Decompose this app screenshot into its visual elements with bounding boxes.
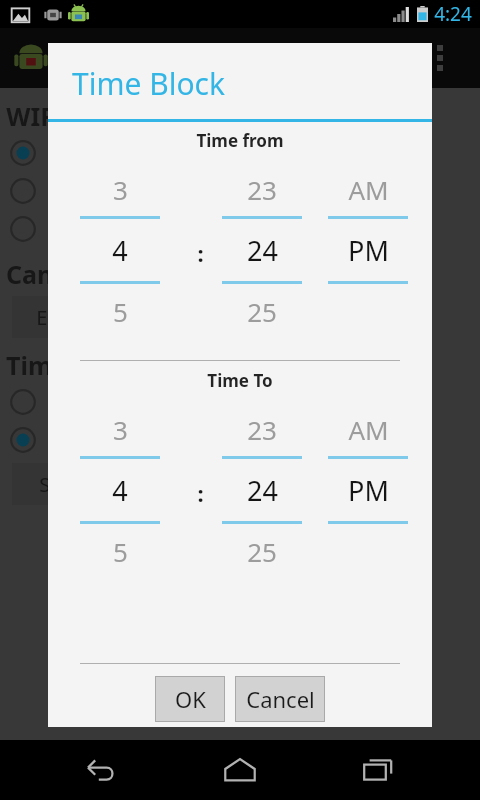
button[interactable]: OK <box>155 676 225 722</box>
button[interactable]: 3 <box>52 402 188 578</box>
button[interactable]: Force ON <box>0 172 480 210</box>
button[interactable]: 3 <box>52 162 188 338</box>
staticText: 25 <box>247 534 277 569</box>
staticText: 23 <box>247 412 277 447</box>
staticText: : <box>197 238 204 268</box>
button[interactable]: AM <box>312 402 424 578</box>
staticText: PM <box>348 472 389 509</box>
staticText: 24 <box>247 232 278 269</box>
button[interactable]: Default <box>0 134 480 172</box>
staticText: PM <box>348 232 389 269</box>
button[interactable]: Recent apps <box>348 740 408 800</box>
staticText: 23 <box>247 172 277 207</box>
button[interactable]: 23 <box>212 162 312 338</box>
button[interactable]: Set Time Block <box>12 463 202 505</box>
staticText: AM <box>348 412 389 447</box>
button[interactable]: AM <box>312 162 424 338</box>
staticText: Camera <box>6 257 102 291</box>
staticText: 25 <box>247 294 277 329</box>
staticText: Time Block <box>6 348 142 382</box>
staticText: : <box>197 478 204 508</box>
staticText: 4 <box>112 232 128 269</box>
staticText: Set Time Block <box>39 471 176 498</box>
staticText: Force OFF <box>48 216 141 243</box>
button[interactable]: Enable Camera <box>12 296 202 338</box>
staticText: 4:24 <box>434 1 472 27</box>
staticText: 5 <box>113 534 128 569</box>
staticText: Time from <box>196 129 284 152</box>
staticText: 3 <box>113 172 128 207</box>
staticText: Enable Camera <box>36 304 178 331</box>
staticText: AM <box>348 172 389 207</box>
staticText: Force ON <box>48 178 136 205</box>
staticText: 4 <box>112 472 128 509</box>
button[interactable]: Cancel <box>235 676 325 722</box>
button[interactable]: Force OFF <box>0 210 480 248</box>
staticText: WIFI <box>6 99 64 133</box>
button[interactable]: 23 <box>212 402 312 578</box>
button[interactable]: All day <box>0 383 480 421</box>
staticText: 5 <box>113 294 128 329</box>
staticText: OK <box>175 684 206 714</box>
button[interactable]: Home <box>210 740 270 800</box>
staticText: 3 <box>113 412 128 447</box>
button[interactable]: More options <box>426 37 454 79</box>
button[interactable]: Back <box>70 740 130 800</box>
staticText: 24 <box>247 472 278 509</box>
button[interactable]: Set time <box>0 421 480 459</box>
staticText: Time To <box>207 369 273 392</box>
staticText: Set time <box>48 427 126 454</box>
staticText: Time Block <box>72 63 225 104</box>
staticText: Cancel <box>246 684 315 714</box>
